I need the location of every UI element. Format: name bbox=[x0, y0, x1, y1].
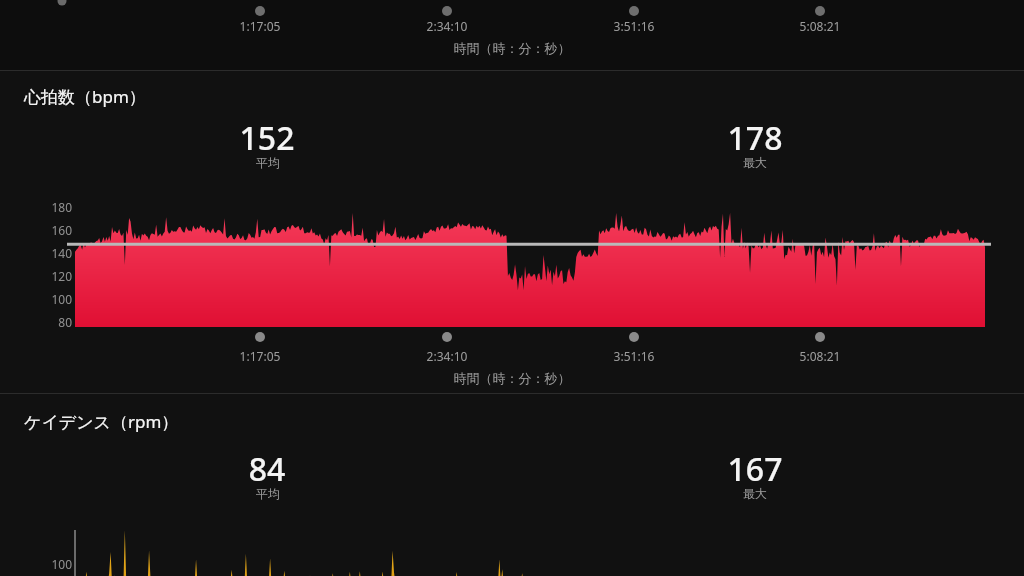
staticText: 時間（時：分：秒） bbox=[412, 40, 612, 56]
staticText: 3:51:16 bbox=[574, 18, 694, 34]
staticText: 平均 bbox=[228, 486, 308, 501]
staticText: 100 bbox=[34, 291, 72, 307]
staticText: 3:51:16 bbox=[574, 348, 694, 364]
staticText: 120 bbox=[34, 268, 72, 284]
button[interactable]: 心拍数（bpm） bbox=[0, 71, 1024, 393]
staticText: 167 bbox=[695, 447, 815, 491]
staticText: 平均 bbox=[228, 155, 308, 170]
staticText: 2:34:10 bbox=[387, 348, 507, 364]
staticText: 心拍数（bpm） bbox=[24, 85, 284, 108]
button[interactable]: Previous chart time axis bbox=[0, 0, 1024, 70]
staticText: 5:08:21 bbox=[760, 348, 880, 364]
staticText: 最大 bbox=[715, 486, 795, 501]
staticText: 80 bbox=[34, 314, 72, 330]
staticText: ケイデンス（rpm） bbox=[24, 410, 344, 433]
staticText: 152 bbox=[207, 116, 327, 160]
staticText: 160 bbox=[34, 222, 72, 238]
button[interactable]: ケイデンス（rpm） bbox=[0, 394, 1024, 576]
staticText: 最大 bbox=[715, 155, 795, 170]
staticText: 1:17:05 bbox=[200, 18, 320, 34]
staticText: 2:34:10 bbox=[387, 18, 507, 34]
staticText: 100 bbox=[34, 556, 72, 572]
staticText: 時間（時：分：秒） bbox=[412, 370, 612, 386]
staticText: 140 bbox=[34, 245, 72, 261]
staticText: 5:08:21 bbox=[760, 18, 880, 34]
staticText: 180 bbox=[34, 199, 72, 215]
staticText: 1:17:05 bbox=[200, 348, 320, 364]
staticText: 84 bbox=[207, 447, 327, 491]
staticText: 178 bbox=[695, 116, 815, 160]
